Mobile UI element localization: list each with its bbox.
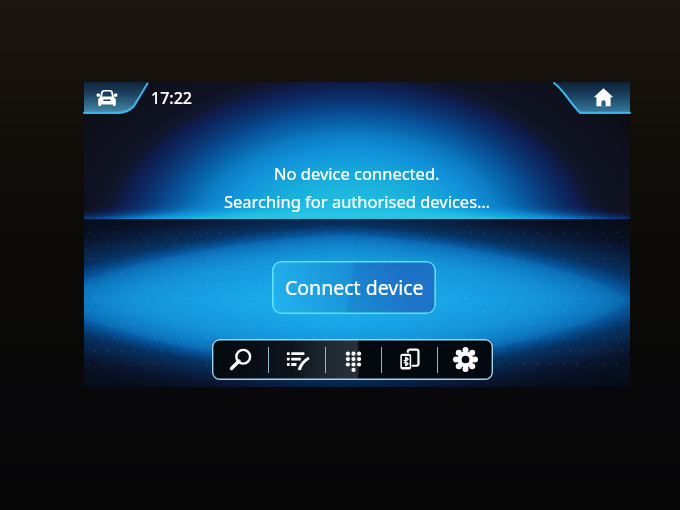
button[interactable]: Search (212, 339, 268, 380)
button[interactable]: Dial pad (326, 339, 381, 380)
staticText: 17:22 (151, 87, 192, 109)
staticText: Searching for authorised devices… (224, 190, 491, 212)
button[interactable]: Settings (438, 339, 493, 380)
button[interactable]: Connect device (382, 339, 437, 380)
button[interactable]: Call list (269, 339, 325, 380)
staticText: Connect device (285, 274, 424, 301)
button[interactable]: Home (550, 82, 630, 114)
staticText: No device connected. (274, 162, 440, 184)
button[interactable]: Vehicle (84, 82, 148, 114)
button[interactable]: Connect device (272, 261, 436, 314)
